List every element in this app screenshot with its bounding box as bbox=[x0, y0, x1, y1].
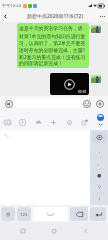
button[interactable]: Voice input bbox=[17, 117, 28, 128]
button[interactable]: Home bbox=[45, 222, 63, 240]
button[interactable]: ， bbox=[90, 145, 108, 157]
button[interactable]: 符 bbox=[1, 207, 15, 221]
button[interactable]: Emoji bbox=[80, 97, 93, 110]
staticText: 00:18 bbox=[78, 90, 87, 94]
button[interactable]: Voice input bbox=[2, 97, 15, 110]
button[interactable]: ？ bbox=[90, 181, 108, 193]
button[interactable]: Recents bbox=[14, 222, 32, 240]
button[interactable]: 这是今天的英语学习任务，请对第1单元的造句知识点进行复习，认真听了，第2单元不要… bbox=[17, 23, 89, 68]
staticText: 符 bbox=[6, 212, 11, 217]
button[interactable]: Space bbox=[33, 207, 68, 221]
button[interactable]: Cloud input bbox=[33, 117, 44, 128]
staticText: ， bbox=[97, 148, 102, 154]
button[interactable]: ！ bbox=[90, 193, 108, 205]
staticText: 123 bbox=[20, 211, 28, 217]
button[interactable]: Input method bbox=[92, 110, 108, 130]
button[interactable]: Skin bbox=[64, 117, 75, 128]
button[interactable]: ● bbox=[90, 169, 108, 181]
button[interactable]: Avatar bbox=[91, 73, 101, 83]
button[interactable]: Enter bbox=[90, 207, 106, 221]
button[interactable]: Avatar bbox=[91, 23, 101, 33]
button[interactable]: Play video bbox=[50, 73, 89, 95]
button[interactable]: Hide keyboard bbox=[92, 132, 106, 143]
button[interactable]: More bbox=[97, 11, 108, 22]
staticText: 中午12:24 bbox=[2, 3, 22, 9]
button[interactable]: 123 bbox=[17, 207, 31, 221]
staticText: ！ bbox=[97, 196, 102, 202]
staticText: 新碧中高2020级11班(72) bbox=[27, 13, 84, 20]
staticText: ？ bbox=[97, 184, 102, 190]
button[interactable]: Settings bbox=[79, 117, 90, 128]
button[interactable]: Back bbox=[0, 11, 11, 22]
staticText: 。 bbox=[97, 160, 102, 166]
button[interactable]: More options bbox=[93, 97, 106, 110]
staticText: 这是今天的英语学习任务，请对第1单元的造句知识点进行复习，认真听了，第2单元不要… bbox=[19, 25, 87, 67]
button[interactable]: Backspace bbox=[70, 207, 88, 221]
button[interactable]: Keyboard layout bbox=[2, 117, 13, 128]
button[interactable]: Back bbox=[77, 222, 95, 240]
button[interactable]: Add shortcut bbox=[48, 117, 59, 128]
staticText: ● bbox=[97, 172, 102, 178]
